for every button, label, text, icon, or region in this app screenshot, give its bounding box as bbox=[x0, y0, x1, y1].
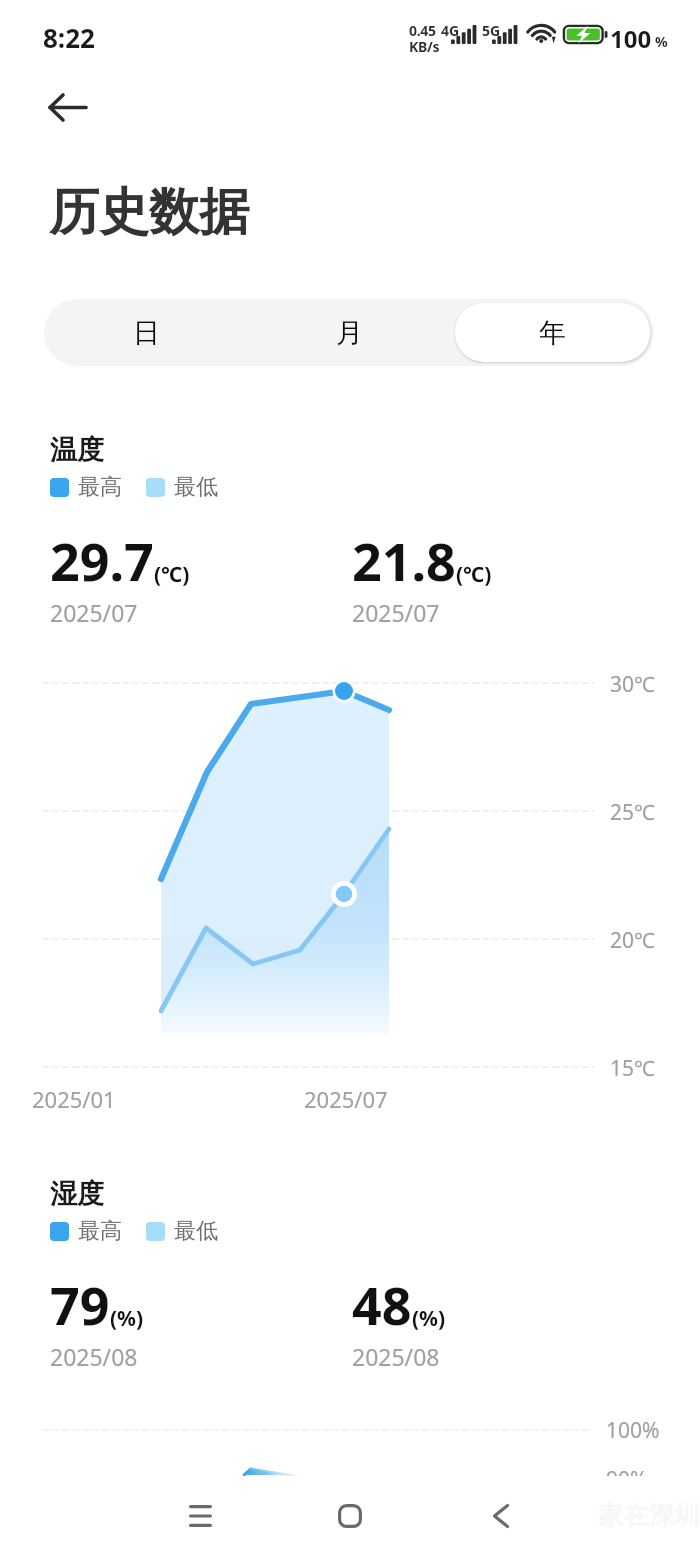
staticText: 日 bbox=[133, 316, 160, 350]
staticText: 湿度 bbox=[50, 1177, 104, 1211]
staticText: 4G bbox=[441, 21, 460, 40]
button[interactable]: Back bbox=[28, 80, 108, 136]
staticText: 2025/07 bbox=[304, 1084, 388, 1114]
staticText: 最高 bbox=[78, 1217, 122, 1245]
staticText: 历史数据 bbox=[49, 181, 249, 244]
staticText: 30℃ bbox=[610, 670, 655, 699]
staticText: 20℃ bbox=[610, 926, 655, 955]
staticText: 15℃ bbox=[610, 1054, 655, 1083]
staticText: 2025/01 bbox=[32, 1084, 116, 1114]
button[interactable]: Back bbox=[461, 1476, 541, 1555]
staticText: 温度 bbox=[50, 433, 104, 467]
staticText: 2025/08 bbox=[50, 1341, 138, 1372]
staticText: 8:22 bbox=[43, 20, 95, 55]
button[interactable]: Recents bbox=[160, 1476, 240, 1555]
staticText: 21.8 bbox=[352, 525, 456, 596]
staticText: % bbox=[655, 32, 668, 51]
button[interactable]: Home bbox=[310, 1476, 390, 1555]
staticText: 100% bbox=[606, 1416, 660, 1445]
staticText: 2025/08 bbox=[352, 1341, 440, 1372]
staticText: 家在深圳 bbox=[598, 1500, 700, 1531]
staticText: 48 bbox=[352, 1269, 412, 1340]
staticText: 最低 bbox=[174, 1217, 218, 1245]
staticText: 0.45 bbox=[409, 21, 436, 40]
staticText: 2025/07 bbox=[352, 597, 440, 628]
staticText: 29.7 bbox=[50, 525, 154, 596]
staticText: (℃) bbox=[456, 560, 492, 589]
staticText: 2025/07 bbox=[50, 597, 138, 628]
staticText: 5G bbox=[482, 21, 501, 40]
staticText: 90% bbox=[606, 1465, 648, 1494]
staticText: 最高 bbox=[78, 473, 122, 501]
staticText: 100 bbox=[610, 22, 652, 55]
staticText: 月 bbox=[336, 316, 363, 350]
button[interactable]: 年 bbox=[455, 303, 650, 362]
staticText: 最低 bbox=[174, 473, 218, 501]
staticText: (℃) bbox=[154, 560, 190, 589]
staticText: 25℃ bbox=[610, 798, 655, 827]
button[interactable]: 月 bbox=[252, 303, 447, 362]
staticText: (%) bbox=[412, 1304, 446, 1333]
staticText: KB/s bbox=[409, 37, 440, 56]
button[interactable]: 日 bbox=[48, 303, 244, 362]
staticText: 年 bbox=[539, 316, 566, 350]
staticText: 79 bbox=[50, 1269, 110, 1340]
staticText: (%) bbox=[110, 1304, 144, 1333]
